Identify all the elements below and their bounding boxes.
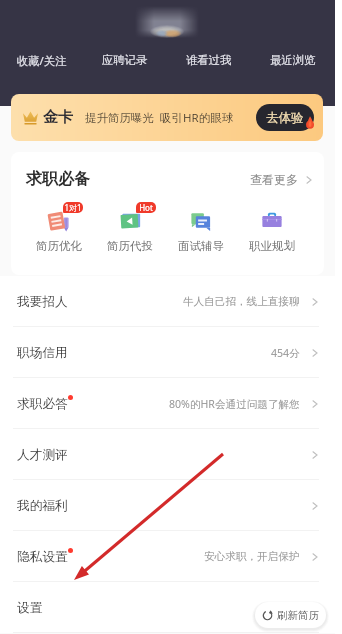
staticText: 求职必答 xyxy=(17,396,68,412)
staticText: 金卡 xyxy=(43,108,73,127)
button[interactable]: 求职必答 xyxy=(0,378,335,429)
button[interactable]: 面试辅导 xyxy=(165,207,236,253)
button[interactable]: 我要招人 xyxy=(0,276,335,327)
button[interactable]: 职业规划 xyxy=(236,207,307,253)
staticText: 1对1 xyxy=(64,202,82,213)
staticText: 牛人自己招，线上直接聊 xyxy=(183,295,300,308)
button[interactable]: 隐私设置 xyxy=(0,531,335,582)
button[interactable]: 查看更多 xyxy=(250,172,313,187)
staticText: 查看更多 xyxy=(250,172,298,187)
button[interactable]: 刷新简历 xyxy=(255,602,326,628)
staticText: 简历代投 xyxy=(107,239,153,253)
staticText: 安心求职，开启保护 xyxy=(204,550,300,563)
button[interactable]: 人才测评 xyxy=(0,429,335,480)
staticText: 职场信用 xyxy=(17,345,68,361)
staticText: 简历优化 xyxy=(36,239,82,253)
staticText: 职业规划 xyxy=(249,239,295,253)
staticText: 人才测评 xyxy=(17,447,68,463)
button[interactable]: 1对1 xyxy=(23,207,94,253)
staticText: 谁看过我 xyxy=(186,53,232,67)
staticText: 最近浏览 xyxy=(270,53,316,67)
staticText: 去体验 xyxy=(266,110,304,126)
staticText: 应聘记录 xyxy=(102,53,148,67)
button[interactable]: 应聘记录 xyxy=(83,0,167,106)
staticText: 我的福利 xyxy=(17,498,68,514)
button[interactable]: Hot xyxy=(94,207,165,253)
staticText: Hot xyxy=(139,202,153,213)
staticText: 收藏/关注 xyxy=(17,53,67,68)
button[interactable]: 我的福利 xyxy=(0,480,335,531)
staticText: 我要招人 xyxy=(17,294,68,310)
button[interactable]: 谁看过我 xyxy=(167,0,251,106)
staticText: 面试辅导 xyxy=(178,239,224,253)
staticText: 求职必备 xyxy=(26,169,90,189)
staticText: 刷新简历 xyxy=(277,609,319,622)
button[interactable]: 金卡 xyxy=(11,94,323,141)
button[interactable]: 职场信用 xyxy=(0,327,335,378)
staticText: 隐私设置 xyxy=(17,549,68,565)
button[interactable]: 设置 xyxy=(0,582,335,633)
staticText: 提升简历曝光 吸引HR的眼球 xyxy=(85,110,234,126)
staticText: 454分 xyxy=(271,346,300,360)
staticText: 80%的HR会通过问题了解您 xyxy=(169,397,300,411)
button[interactable]: 去体验 xyxy=(256,104,314,131)
staticText: 设置 xyxy=(17,600,43,616)
button[interactable]: 收藏/关注 xyxy=(0,0,83,106)
button[interactable]: 最近浏览 xyxy=(251,0,335,106)
